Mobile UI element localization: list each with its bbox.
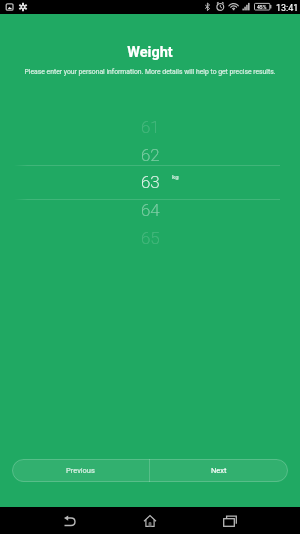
button[interactable]: Next (150, 459, 288, 482)
button[interactable]: Home (138, 509, 162, 533)
staticText: Previous (66, 466, 95, 475)
button[interactable]: 62 (0, 141, 300, 168)
staticText: 45% (257, 4, 267, 10)
staticText: Next (211, 466, 227, 475)
button[interactable]: Recent apps (218, 509, 242, 533)
button[interactable]: 63 (0, 168, 300, 195)
staticText: kg (172, 173, 179, 180)
button[interactable]: Previous (12, 459, 149, 482)
staticText: 13:41 (276, 3, 299, 14)
staticText: 61 (141, 117, 160, 137)
staticText: Please enter your personal information. … (0, 68, 300, 76)
staticText: 63 (141, 172, 160, 192)
staticText: 65 (141, 228, 160, 248)
staticText: 62 (141, 145, 160, 165)
staticText: 64 (141, 200, 160, 220)
button[interactable]: Back (58, 509, 82, 533)
button[interactable]: 64 (0, 196, 300, 223)
staticText: Weight (0, 44, 300, 61)
